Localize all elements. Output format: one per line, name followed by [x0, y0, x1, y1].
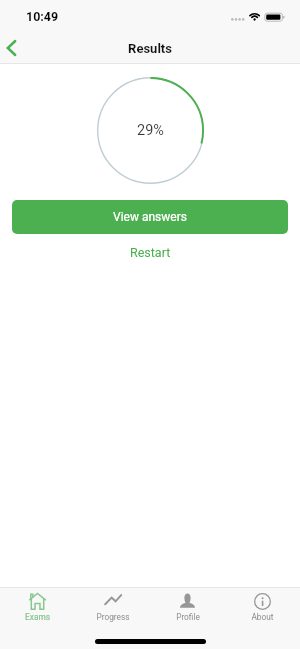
staticText: Exams — [25, 612, 50, 622]
staticText: Profile — [176, 612, 200, 622]
staticText: 29% — [137, 122, 164, 139]
staticText: 10:49 — [26, 9, 59, 24]
button[interactable]: About — [225, 588, 300, 649]
button[interactable]: Profile — [150, 588, 225, 649]
staticText: View answers — [113, 210, 187, 224]
staticText: About — [251, 612, 274, 622]
button[interactable]: Restart — [110, 241, 191, 264]
staticText: Progress — [96, 612, 130, 622]
staticText: Results — [0, 41, 300, 56]
button[interactable]: Back — [0, 31, 24, 63]
button[interactable]: View answers — [12, 200, 288, 234]
button[interactable]: Progress — [75, 588, 150, 649]
staticText: Restart — [130, 245, 171, 260]
button[interactable]: Exams — [0, 588, 75, 649]
